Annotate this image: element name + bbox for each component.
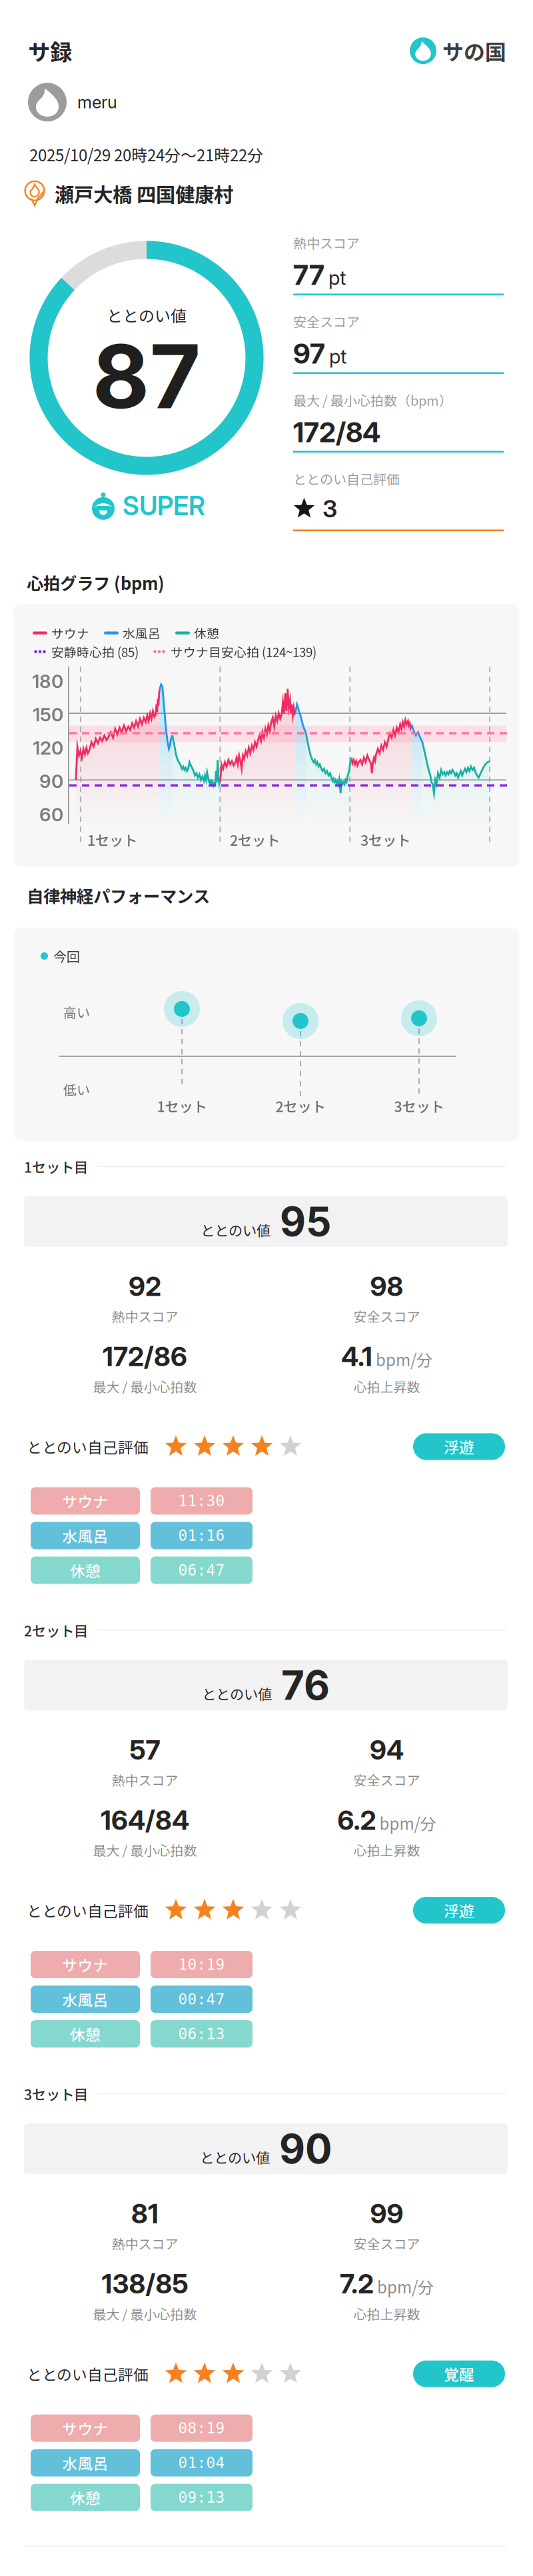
staticText: ととのい自己評価 — [27, 1436, 149, 1458]
staticText: 2セット — [230, 829, 280, 850]
staticText: 00:47 — [178, 1990, 225, 2008]
staticText: 最大 / 最小心拍数（bpm） — [293, 390, 452, 410]
staticText: サの国 — [442, 35, 506, 66]
staticText: 浮遊 — [444, 1899, 474, 1921]
staticText: 97 — [293, 337, 325, 370]
button[interactable]: 浮遊 — [413, 1433, 505, 1460]
staticText: 最大 / 最小心拍数 — [93, 1377, 197, 1396]
staticText: 高い — [63, 1002, 90, 1022]
staticText: ととのい値 — [201, 1220, 270, 1240]
staticText: 95 — [280, 1197, 331, 1246]
staticText: 2セット目 — [24, 1620, 88, 1641]
staticText: ととのい自己評価 — [27, 1899, 149, 1921]
staticText: サウナ — [51, 624, 89, 642]
staticText: 熱中スコア — [112, 1306, 178, 1326]
staticText: 90 — [39, 770, 63, 793]
staticText: 水風呂 — [123, 624, 161, 642]
staticText: 3 — [322, 494, 337, 523]
staticText: 浮遊 — [444, 1436, 474, 1458]
staticText: ととのい自己評価 — [293, 469, 400, 488]
staticText: 3セット — [394, 1096, 444, 1116]
staticText: 休憩 — [194, 624, 219, 642]
staticText: 瀬戸大橋 四国健康村 — [55, 179, 233, 208]
staticText: サウナ — [62, 1954, 108, 1975]
staticText: 77 — [293, 258, 324, 292]
button[interactable]: 覚醒 — [413, 2361, 505, 2387]
staticText: ととのい値 — [202, 1683, 272, 1704]
staticText: 172/84 — [293, 416, 380, 449]
staticText: 休憩 — [70, 2023, 101, 2045]
staticText: 60 — [39, 803, 63, 826]
staticText: pt — [328, 266, 346, 290]
staticText: 81 — [131, 2197, 159, 2230]
staticText: SUPER — [123, 490, 205, 521]
staticText: 低い — [63, 1080, 90, 1099]
staticText: 自律神経パフォーマンス — [27, 883, 210, 908]
staticText: 水風呂 — [62, 1525, 108, 1547]
staticText: meru — [77, 92, 117, 112]
staticText: 4.1 — [341, 1340, 372, 1373]
staticText: 94 — [370, 1734, 404, 1766]
staticText: 熱中スコア — [112, 2234, 178, 2253]
button[interactable]: 浮遊 — [413, 1897, 505, 1924]
staticText: 2025/10/29 20時24分〜21時22分 — [29, 143, 263, 166]
staticText: 11:30 — [178, 1492, 225, 1510]
staticText: 最大 / 最小心拍数 — [93, 2304, 197, 2323]
staticText: 6.2 — [337, 1804, 376, 1836]
staticText: 最大 / 最小心拍数 — [93, 1840, 197, 1860]
staticText: 心拍上昇数 — [353, 1377, 420, 1396]
staticText: ととのい自己評価 — [27, 2363, 149, 2385]
staticText: 休憩 — [70, 1559, 101, 1581]
staticText: 180 — [32, 670, 63, 693]
staticText: 熱中スコア — [112, 1770, 178, 1789]
staticText: 7.2 — [340, 2268, 374, 2300]
staticText: 99 — [370, 2197, 403, 2230]
staticText: 安全スコア — [353, 1306, 420, 1326]
staticText: bpm/分 — [377, 2275, 434, 2298]
staticText: 1セット — [87, 829, 137, 850]
staticText: 06:13 — [178, 2025, 225, 2043]
staticText: bpm/分 — [376, 1348, 432, 1371]
staticText: 92 — [129, 1270, 161, 1302]
staticText: ととのい値 — [107, 303, 187, 327]
staticText: 138/85 — [102, 2268, 188, 2300]
staticText: 安全スコア — [293, 312, 360, 331]
staticText: 76 — [281, 1661, 330, 1709]
staticText: 3セット — [360, 829, 410, 850]
staticText: 1セット — [157, 1096, 207, 1116]
staticText: 120 — [33, 737, 63, 759]
staticText: 安全スコア — [353, 2234, 420, 2253]
staticText: 164/84 — [101, 1804, 189, 1836]
staticText: サ録 — [28, 35, 72, 67]
staticText: 水風呂 — [62, 2452, 108, 2474]
staticText: pt — [329, 345, 346, 368]
staticText: 覚醒 — [444, 2363, 474, 2385]
button[interactable]: サの国 — [410, 35, 506, 66]
staticText: 2セット — [275, 1096, 325, 1116]
staticText: サウナ — [62, 1490, 108, 1512]
staticText: 水風呂 — [62, 1988, 108, 2010]
staticText: 3セット目 — [24, 2084, 88, 2104]
staticText: 10:19 — [178, 1956, 225, 1973]
staticText: 98 — [370, 1270, 403, 1302]
staticText: 90 — [279, 2125, 332, 2173]
staticText: 1セット目 — [24, 1156, 88, 1177]
staticText: 08:19 — [178, 2419, 225, 2437]
staticText: 01:04 — [178, 2454, 225, 2472]
staticText: 心拍上昇数 — [353, 1840, 420, 1860]
staticText: 安静時心拍 (85) — [51, 643, 139, 661]
staticText: 06:47 — [178, 1561, 225, 1579]
staticText: 安全スコア — [353, 1770, 420, 1789]
staticText: サウナ — [62, 2417, 108, 2439]
staticText: 心拍上昇数 — [353, 2304, 420, 2323]
staticText: 150 — [33, 703, 63, 726]
staticText: サウナ目安心拍 (124~139) — [171, 643, 316, 661]
staticText: 09:13 — [178, 2489, 225, 2506]
staticText: 熱中スコア — [293, 233, 360, 252]
staticText: 57 — [130, 1734, 160, 1766]
staticText: 休憩 — [70, 2487, 101, 2508]
staticText: 172/86 — [103, 1340, 187, 1373]
staticText: 今回 — [53, 946, 80, 966]
staticText: 01:16 — [178, 1527, 225, 1544]
staticText: bpm/分 — [379, 1811, 436, 1834]
